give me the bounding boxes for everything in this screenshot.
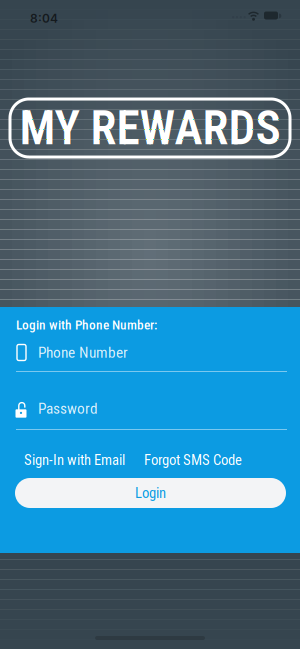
button[interactable]: Forgot SMS Code [144,452,242,468]
staticText: Phone Number [38,343,128,361]
staticText: MY REWARDS [19,100,280,156]
staticText: Sign-In with Email [24,451,125,469]
staticText: Login [135,484,166,502]
button[interactable]: Login [15,478,286,508]
staticText: Login with Phone Number: [16,317,157,333]
staticText: 8:04 [30,11,58,25]
staticText: Forgot SMS Code [144,451,242,469]
button[interactable]: Sign-In with Email [24,452,125,468]
staticText: Password [38,399,98,417]
